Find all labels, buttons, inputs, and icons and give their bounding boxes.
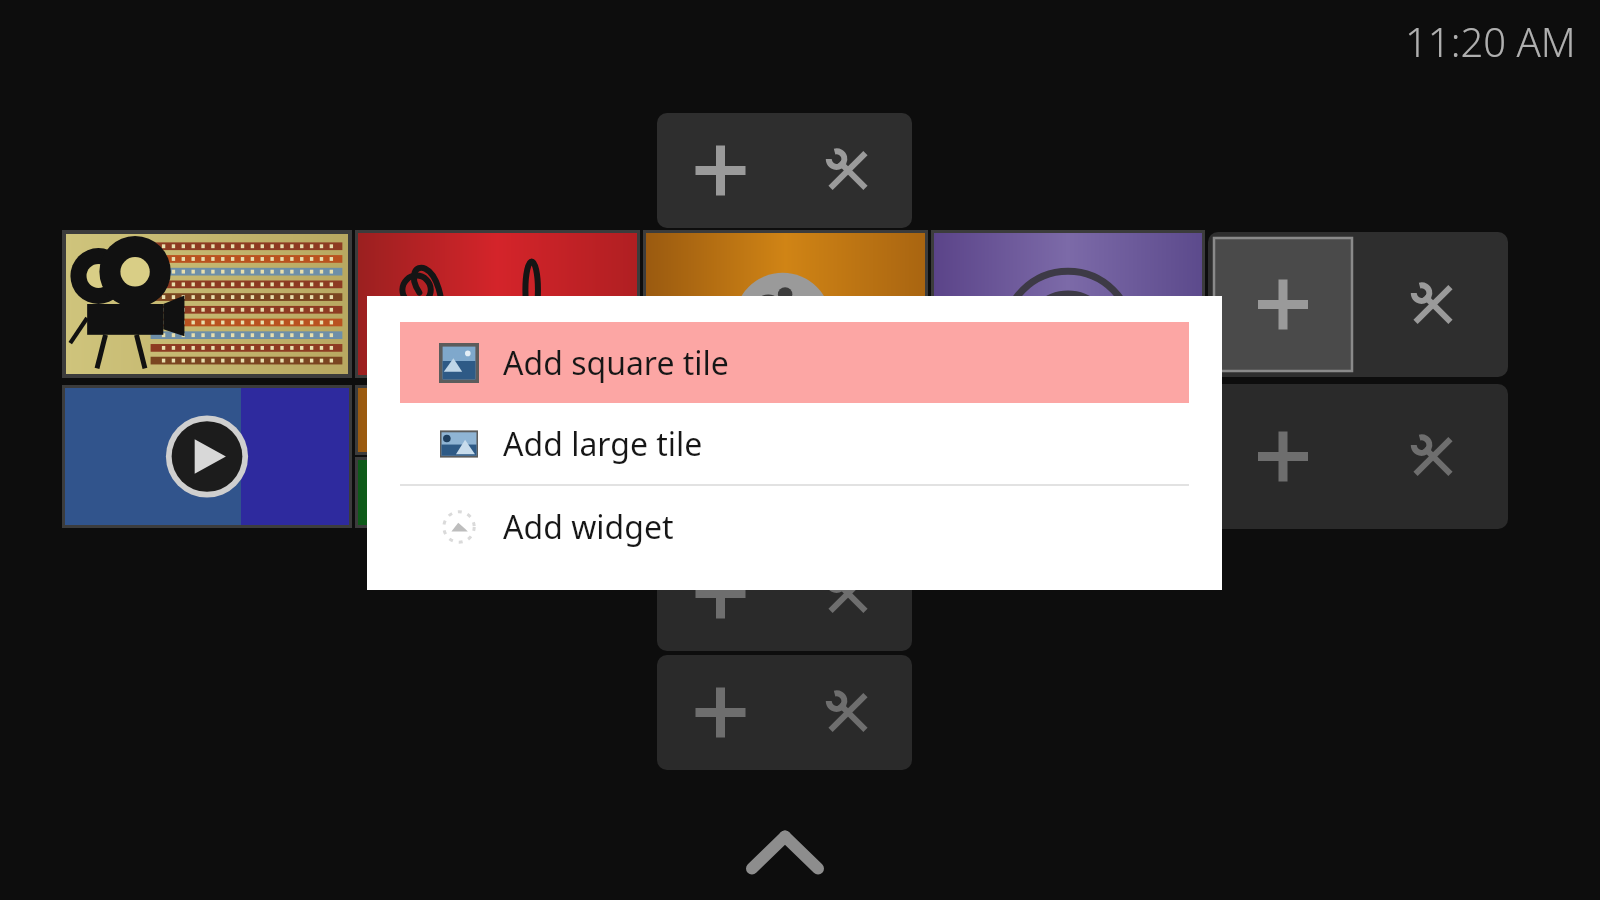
button[interactable]: Add large tile — [400, 403, 1189, 484]
staticText: Add large tile — [503, 422, 703, 466]
staticText: Add square tile — [503, 341, 729, 385]
button[interactable] — [646, 233, 925, 375]
button[interactable] — [358, 388, 637, 452]
button[interactable]: Settings — [784, 113, 912, 228]
button[interactable]: Settings — [784, 655, 912, 770]
button[interactable]: Add — [657, 113, 784, 228]
button[interactable]: Add square tile — [400, 322, 1189, 403]
button[interactable] — [934, 233, 1202, 375]
staticText: Add widget — [503, 505, 674, 549]
button[interactable]: Add — [1208, 384, 1358, 529]
button[interactable]: Add — [657, 536, 784, 651]
button[interactable]: Add widget — [400, 486, 1189, 567]
button[interactable] — [66, 234, 348, 374]
staticText: 11:20 AM — [1405, 14, 1576, 68]
button[interactable] — [65, 388, 349, 525]
button[interactable]: Expand — [735, 820, 835, 885]
button[interactable] — [358, 233, 637, 375]
button[interactable] — [934, 388, 1202, 525]
button[interactable]: Add — [657, 655, 784, 770]
button[interactable]: Settings — [1358, 232, 1508, 377]
button[interactable]: Add — [1214, 238, 1352, 371]
button[interactable] — [358, 460, 637, 525]
button[interactable]: Settings — [784, 536, 912, 651]
button[interactable]: Settings — [1358, 384, 1508, 529]
button[interactable] — [646, 388, 925, 525]
